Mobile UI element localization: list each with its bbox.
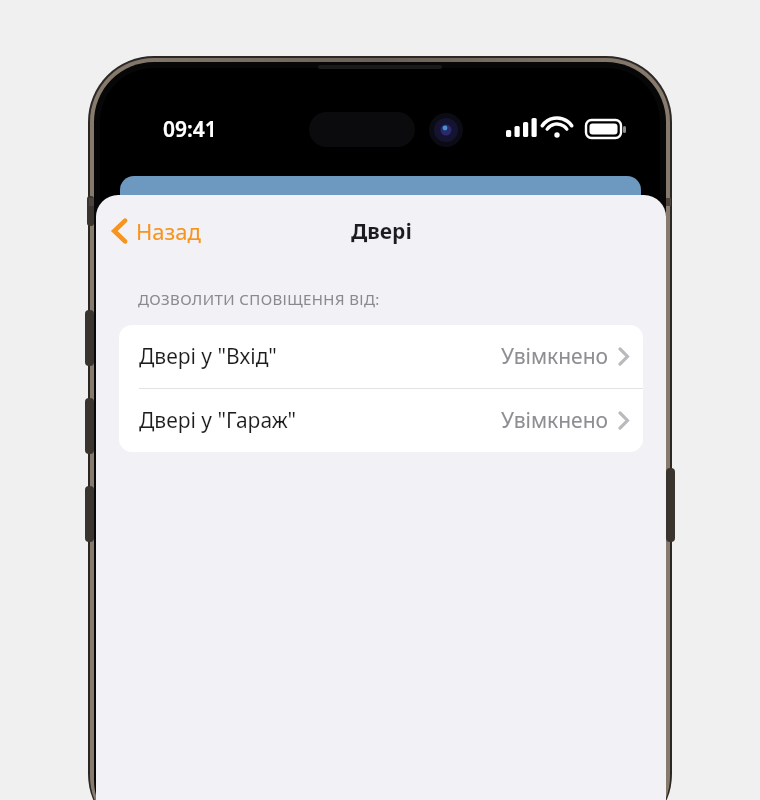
staticText: Двері	[351, 217, 412, 246]
staticText: Увімкнено	[500, 342, 608, 371]
staticText: 09:41	[163, 115, 217, 144]
staticText: ДОЗВОЛИТИ СПОВІЩЕННЯ ВІД:	[138, 289, 380, 309]
staticText: Двері у "Гараж"	[139, 406, 297, 435]
button[interactable]: Двері у "Вхід"	[119, 325, 643, 388]
button[interactable]: Двері у "Гараж"	[119, 389, 643, 452]
button[interactable]: Назад	[104, 210, 209, 252]
staticText: Увімкнено	[500, 406, 608, 435]
staticText: Двері у "Вхід"	[139, 342, 277, 371]
staticText: Назад	[136, 216, 201, 246]
